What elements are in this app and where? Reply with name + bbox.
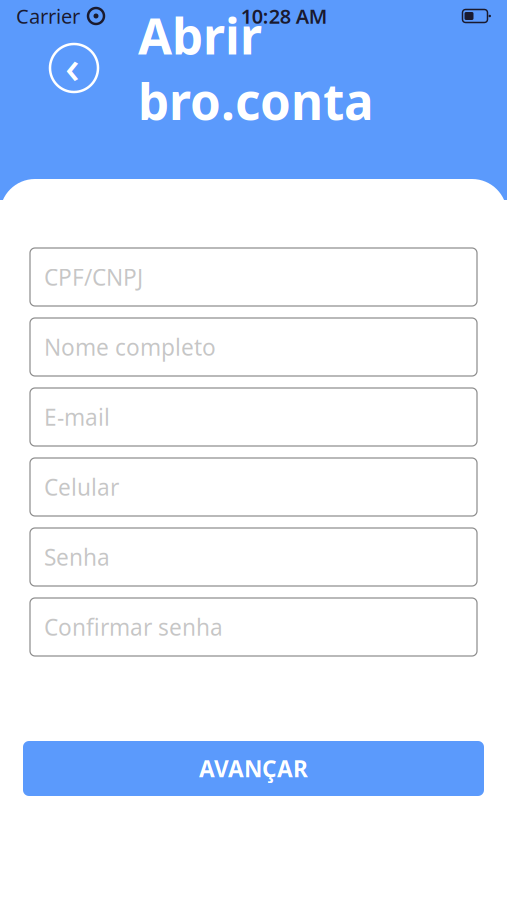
staticText: 10:28 AM — [241, 3, 328, 29]
button[interactable]: Celular — [30, 458, 477, 516]
button[interactable]: Nome completo — [30, 318, 477, 376]
button[interactable]: Back — [48, 42, 100, 94]
staticText: Carrier — [16, 3, 80, 29]
button[interactable]: Senha — [30, 528, 477, 586]
staticText: Celular — [44, 472, 119, 502]
button[interactable]: CPF/CNPJ — [30, 248, 477, 306]
button[interactable]: E-mail — [30, 388, 477, 446]
staticText: E-mail — [44, 402, 110, 432]
staticText: CPF/CNPJ — [44, 262, 143, 292]
staticText: Senha — [44, 542, 110, 572]
staticText: ‹ — [65, 36, 80, 96]
staticText: Nome completo — [44, 332, 216, 362]
staticText: Confirmar senha — [44, 612, 223, 642]
staticText: Abrir bro.conta — [138, 2, 374, 133]
button[interactable]: AVANÇAR — [23, 741, 484, 796]
button[interactable]: Confirmar senha — [30, 598, 477, 656]
staticText: AVANÇAR — [199, 753, 308, 783]
